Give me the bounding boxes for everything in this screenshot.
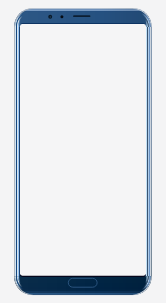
button[interactable] — [0, 0, 166, 303]
